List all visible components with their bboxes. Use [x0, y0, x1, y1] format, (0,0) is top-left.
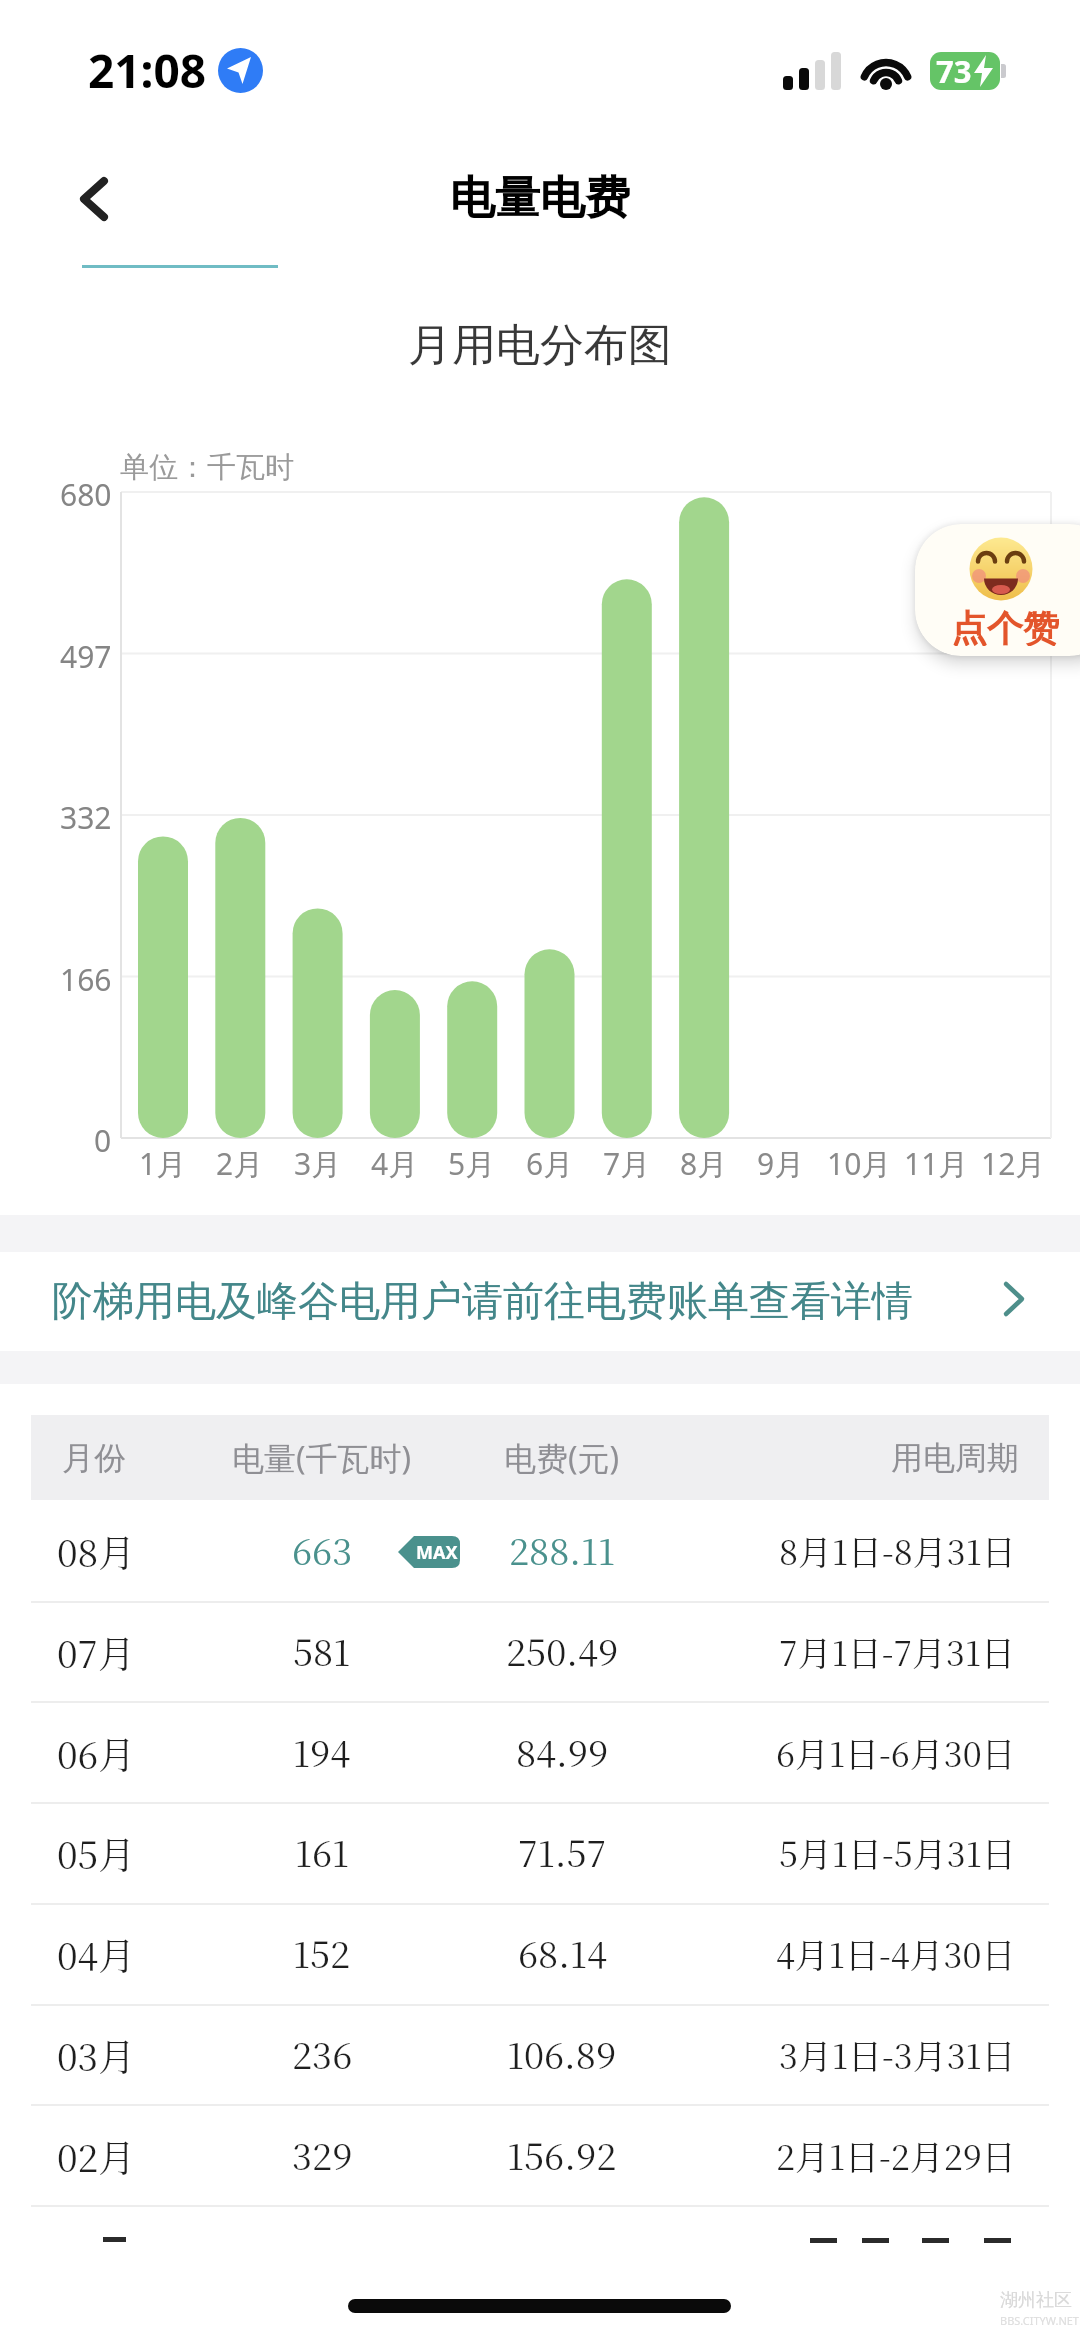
staticText: 12月 — [981, 1143, 1046, 1184]
staticText: 4月 — [371, 1143, 419, 1184]
staticText: 2月 — [216, 1143, 264, 1184]
button[interactable] — [31, 2104, 1049, 2205]
staticText: 4月1日-4月30日 — [776, 1929, 1016, 1978]
staticText: 497 — [60, 636, 112, 677]
staticText: 0 — [94, 1120, 112, 1161]
button[interactable] — [31, 1903, 1049, 2004]
staticText: 电费(元) — [504, 1436, 620, 1480]
staticText: 6月1日-6月30日 — [776, 1728, 1016, 1777]
staticText: 166 — [60, 959, 112, 1000]
staticText: 5月1日-5月31日 — [779, 1828, 1016, 1877]
staticText: 7月 — [603, 1143, 651, 1184]
staticText: 3月1日-3月31日 — [779, 2030, 1016, 2079]
staticText: 8月1日-8月31日 — [779, 1526, 1016, 1575]
staticText: 71.57 — [518, 1826, 607, 1878]
staticText: 152 — [293, 1927, 351, 1979]
staticText: 6月 — [526, 1143, 574, 1184]
staticText: 月用电分布图 — [408, 318, 672, 373]
staticText: 73 — [936, 50, 972, 92]
button[interactable] — [31, 1802, 1049, 1903]
button[interactable] — [31, 2004, 1049, 2105]
staticText: MAX — [416, 1540, 458, 1565]
staticText: 03月 — [57, 2028, 136, 2081]
staticText: 07月 — [57, 1625, 135, 1678]
staticText: 1月 — [139, 1143, 187, 1184]
staticText: 02月 — [57, 2129, 136, 2182]
staticText: 156.92 — [507, 2129, 617, 2181]
staticText: 阶梯用电及峰谷电用户请前往电费账单查看详情 — [52, 1276, 913, 1328]
staticText: 11月 — [904, 1143, 969, 1184]
button[interactable]: 点个赞 — [915, 524, 1080, 656]
staticText: 236 — [292, 2028, 353, 2080]
staticText: 单位：千瓦时 — [120, 449, 294, 486]
staticText: 04月 — [57, 1927, 136, 1980]
staticText: 5月 — [448, 1143, 496, 1184]
button[interactable] — [31, 1701, 1049, 1802]
button[interactable] — [31, 1500, 1049, 1601]
button[interactable] — [60, 160, 140, 240]
staticText: 06月 — [57, 1726, 136, 1779]
staticText: 2月1日-2月29日 — [776, 2131, 1016, 2180]
staticText: 电量电费 — [450, 170, 630, 227]
staticText: 194 — [293, 1726, 351, 1778]
staticText: 9月 — [757, 1143, 805, 1184]
staticText: BBS.CITYW.NET — [1000, 2313, 1079, 2328]
staticText: 3月 — [294, 1143, 342, 1184]
staticText: 68.14 — [518, 1927, 607, 1979]
staticText: 05月 — [57, 1826, 136, 1879]
staticText: 月份 — [62, 1438, 126, 1478]
staticText: 21:08 — [88, 39, 207, 102]
button[interactable]: 阶梯用电及峰谷电用户请前往电费账单查看详情 — [0, 1252, 1080, 1351]
staticText: 7月1日-7月31日 — [779, 1627, 1016, 1676]
staticText: 点个赞 — [951, 606, 1059, 646]
staticText: 84.99 — [516, 1726, 609, 1778]
staticText: 581 — [293, 1625, 351, 1677]
staticText: 161 — [295, 1826, 350, 1878]
staticText: 288.11 — [509, 1524, 615, 1576]
staticText: 332 — [60, 797, 112, 838]
staticText: 106.89 — [507, 2028, 617, 2080]
staticText: 329 — [292, 2129, 353, 2181]
button[interactable] — [31, 1601, 1049, 1702]
staticText: 电量(千瓦时) — [232, 1436, 412, 1480]
staticText: 湖州社区 — [1000, 2289, 1072, 2312]
staticText: 08月 — [57, 1524, 136, 1577]
staticText: 250.49 — [506, 1625, 619, 1677]
staticText: 680 — [60, 474, 112, 515]
staticText: 用电周期 — [891, 1438, 1019, 1478]
staticText: 10月 — [827, 1143, 892, 1184]
staticText: 663 — [292, 1524, 353, 1576]
staticText: 8月 — [680, 1143, 728, 1184]
